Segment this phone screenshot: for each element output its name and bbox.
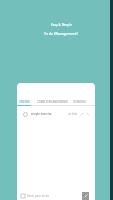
button[interactable]: SCHEDULE bbox=[72, 98, 86, 105]
staticText: SCHEDULE bbox=[73, 100, 86, 103]
button[interactable]: simple exercise bbox=[17, 106, 95, 122]
staticText: Enter your to do bbox=[27, 194, 50, 198]
other: Edit bbox=[80, 112, 84, 116]
staticText: To do Management! bbox=[44, 31, 78, 36]
button[interactable]: COMPLETED AND MISSED bbox=[36, 98, 68, 105]
staticText: COMPLETED AND MISSED bbox=[37, 100, 68, 103]
staticText: simple exercise bbox=[31, 112, 52, 116]
staticText: UNDONE bbox=[19, 100, 30, 103]
other: Delete bbox=[86, 112, 90, 116]
button[interactable]: UNDONE bbox=[17, 98, 31, 105]
staticText: no date bbox=[68, 112, 78, 116]
staticText: Easy & Simple bbox=[51, 23, 72, 27]
button[interactable]: Send bbox=[82, 192, 89, 200]
